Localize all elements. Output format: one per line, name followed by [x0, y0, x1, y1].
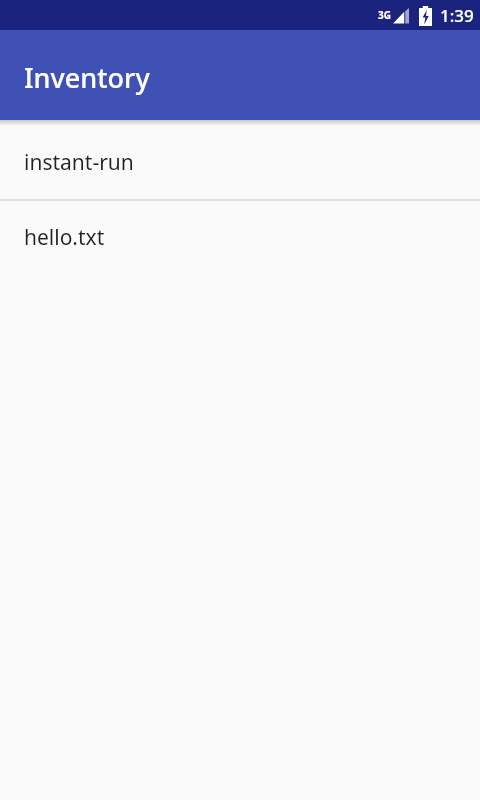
- staticText: hello.txt: [24, 223, 105, 252]
- staticText: 3G: [378, 8, 391, 22]
- staticText: 1:39: [440, 4, 474, 27]
- staticText: Inventory: [24, 59, 150, 96]
- button[interactable]: hello.txt: [0, 201, 480, 274]
- other: Battery charging: [419, 6, 432, 26]
- button[interactable]: instant-run: [0, 126, 480, 199]
- staticText: instant-run: [24, 148, 134, 177]
